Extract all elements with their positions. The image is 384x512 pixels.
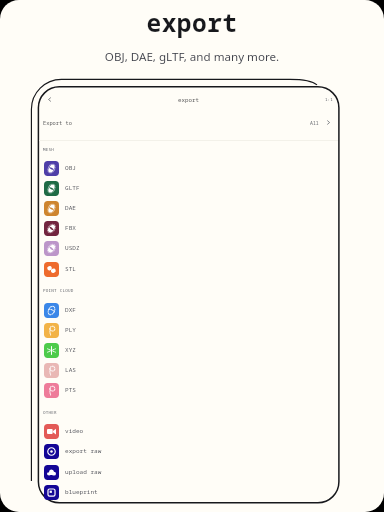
button[interactable]: PLY — [39, 320, 338, 340]
button[interactable]: GLTF — [39, 178, 338, 198]
staticText: export raw — [65, 447, 102, 455]
staticText: OBJ, DAE, gLTF, and many more. — [0, 49, 384, 65]
staticText: DAE — [65, 204, 76, 212]
button[interactable]: LAS — [39, 360, 338, 380]
staticText: All — [310, 120, 319, 127]
button[interactable]: DAE — [39, 198, 338, 218]
staticText: OBJ — [65, 164, 76, 172]
staticText: STL — [65, 265, 76, 273]
staticText: LAS — [65, 366, 76, 374]
button[interactable]: Back — [42, 92, 56, 106]
staticText: export — [0, 6, 384, 39]
staticText: video — [65, 427, 84, 435]
staticText: GLTF — [65, 184, 80, 192]
staticText: MESH — [43, 146, 55, 152]
button[interactable]: XYZ — [39, 340, 338, 360]
staticText: PTS — [65, 386, 76, 394]
staticText: OTHER — [43, 409, 57, 415]
button[interactable]: export raw — [39, 441, 338, 461]
button[interactable]: STL — [39, 259, 338, 279]
staticText: USDZ — [65, 244, 80, 252]
staticText: XYZ — [65, 346, 76, 354]
staticText: DXF — [65, 306, 76, 314]
button[interactable]: PTS — [39, 380, 338, 400]
button[interactable]: upload raw — [39, 462, 338, 482]
staticText: upload raw — [65, 468, 102, 476]
staticText: FBX — [65, 224, 76, 232]
staticText: Export to — [43, 119, 72, 126]
button[interactable]: blueprint — [39, 482, 338, 502]
button[interactable]: OBJ — [39, 158, 338, 178]
staticText: POINT CLOUD — [43, 287, 74, 293]
button[interactable]: DXF — [39, 300, 338, 320]
staticText: blueprint — [65, 488, 98, 496]
button[interactable]: Export to — [39, 109, 338, 140]
button[interactable]: USDZ — [39, 238, 338, 258]
staticText: export — [39, 96, 338, 104]
staticText: PLY — [65, 326, 76, 334]
button[interactable]: video — [39, 421, 338, 441]
button[interactable]: 1:1 — [325, 96, 333, 102]
button[interactable]: FBX — [39, 218, 338, 238]
